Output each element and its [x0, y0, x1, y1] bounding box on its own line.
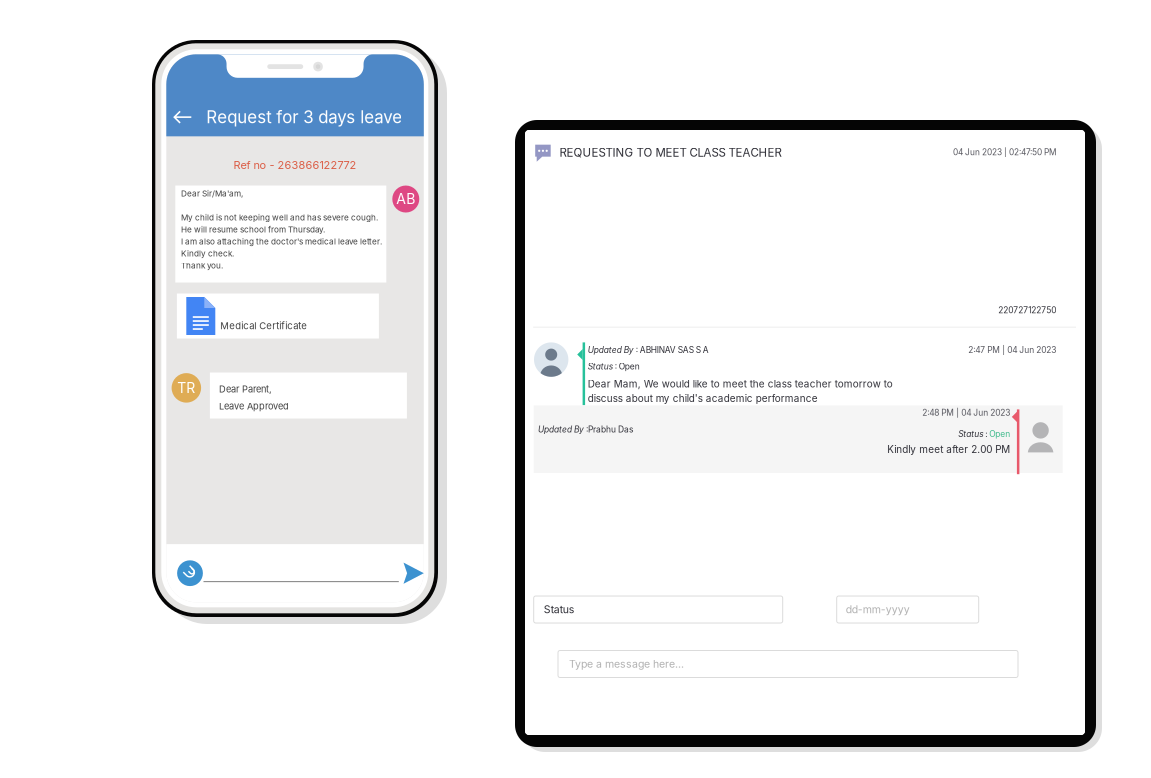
staticText: 2:47 PM | 04 Jun 2023: [968, 345, 1056, 355]
staticText: TR: [177, 379, 195, 396]
staticText: 220727122750: [998, 305, 1056, 315]
staticText: REQUESTING TO MEET CLASS TEACHER: [559, 146, 781, 160]
staticText: He will resume school from Thursday.: [181, 225, 325, 234]
staticText: dd-mm-yyyy: [846, 603, 910, 616]
staticText: 04 Jun 2023 | 02:47:50 PM: [953, 147, 1056, 157]
button[interactable]: Status: [534, 596, 783, 623]
staticText: Dear Sir/Ma'am,: [181, 188, 243, 198]
staticText: I am also attaching the doctor's medical…: [181, 237, 382, 246]
staticText: 2:48 PM | 04 Jun 2023: [922, 408, 1010, 418]
button[interactable]: Type a message here...: [558, 650, 1018, 677]
staticText: My child is not keeping well and has sev…: [181, 213, 378, 222]
staticText: Type a message here...: [569, 658, 684, 670]
staticText: Leave Approved: [219, 401, 289, 412]
staticText: Kindly check.: [181, 249, 234, 258]
staticText: Open: [989, 429, 1010, 439]
staticText: Kindly meet after 2.00 PM: [887, 443, 1010, 455]
staticText: Status: [544, 603, 575, 616]
staticText: Updated By : ABHINAV SAS S A: [588, 345, 709, 355]
staticText: Status : Open: [588, 362, 640, 371]
staticText: Status :: [958, 429, 989, 439]
staticText: Updated By :Prabhu Das: [538, 424, 633, 434]
button[interactable]: Send: [403, 563, 424, 584]
button[interactable]: Attach file: [177, 560, 203, 586]
staticText: AB: [396, 191, 415, 207]
button[interactable]: Request for 3 days leave: [166, 54, 424, 136]
button[interactable]: Medical Certificate: [177, 293, 379, 338]
staticText: Dear Parent,: [219, 383, 272, 395]
staticText: Ref no - 263866122772: [234, 158, 357, 171]
button[interactable]: dd-mm-yyyy: [837, 596, 979, 623]
staticText: Thank you.: [181, 261, 223, 270]
staticText: Request for 3 days leave: [206, 107, 402, 127]
staticText: discuss about my child's academic perfor…: [588, 392, 818, 404]
staticText: Medical Certificate: [220, 320, 307, 332]
staticText: Dear Mam, We would like to meet the clas…: [588, 378, 893, 390]
